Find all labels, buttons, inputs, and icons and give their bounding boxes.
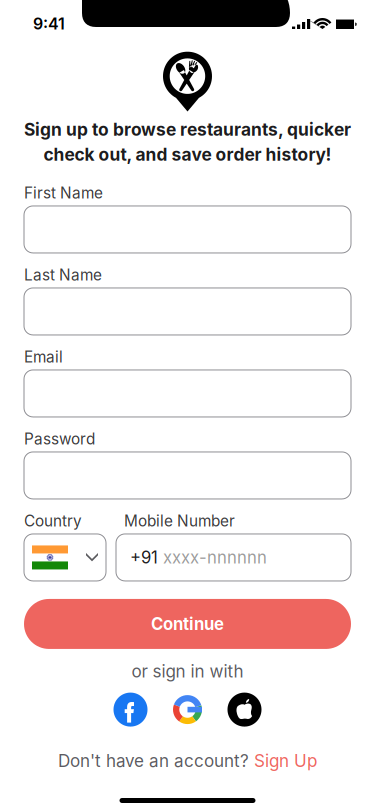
staticText: Sign up to browse restaurants, quicker [24,119,351,140]
staticText: Mobile Number [124,512,235,530]
staticText: Sign Up [254,750,317,771]
staticText: First Name [24,184,103,202]
button[interactable] [24,206,351,253]
staticText: xxxx-nnnnnn [163,547,267,568]
staticText: Email [24,348,63,366]
button[interactable]: Sign in with Facebook [113,693,147,727]
button[interactable] [24,288,351,335]
staticText: Don't have an account? [58,750,249,771]
staticText: or sign in with [131,661,243,681]
button[interactable] [24,370,351,417]
button[interactable]: Sign in with Google [170,693,204,727]
staticText: 9:41 [33,14,65,33]
button[interactable] [24,452,351,499]
button[interactable] [24,534,106,581]
staticText: Country [24,512,82,530]
button[interactable]: Sign in with Apple [227,693,261,727]
button[interactable]: Don't have an account? [58,750,317,771]
staticText: Password [24,430,95,448]
staticText: +91 [130,547,158,568]
staticText: Last Name [24,266,102,284]
staticText: check out, and save order history! [43,144,331,165]
button[interactable]: +91 [116,534,351,581]
button[interactable]: Continue [24,599,351,649]
staticText: Continue [151,614,224,634]
